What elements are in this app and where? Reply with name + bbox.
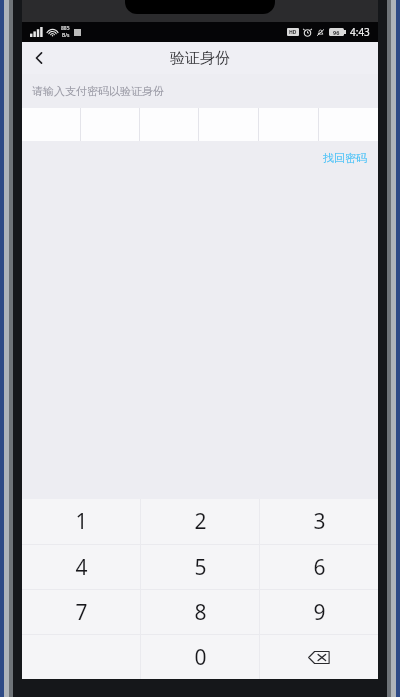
button[interactable]: 找回密码: [320, 149, 370, 167]
button[interactable]: 8: [141, 590, 259, 634]
staticText: 找回密码: [323, 151, 367, 165]
staticText: 6: [313, 553, 326, 582]
staticText: 7: [75, 598, 88, 627]
button[interactable]: 4: [22, 545, 140, 589]
staticText: 96: [333, 29, 340, 36]
button[interactable]: 1: [22, 499, 140, 544]
staticText: 5: [194, 553, 207, 582]
staticText: 请输入支付密码以验证身份: [32, 84, 164, 98]
button[interactable]: 2: [141, 499, 259, 544]
staticText: HD: [289, 29, 297, 36]
staticText: 2: [194, 507, 207, 536]
button[interactable]: 0: [141, 635, 259, 679]
button[interactable]: 5: [141, 545, 259, 589]
staticText: 3: [313, 507, 326, 536]
button[interactable]: Backspace: [260, 635, 378, 679]
staticText: 0: [194, 643, 207, 672]
staticText: 1: [75, 507, 88, 536]
staticText: B/s: [62, 32, 70, 39]
staticText: 4: [75, 553, 88, 582]
staticText: 验证身份: [170, 49, 230, 68]
button[interactable]: 6: [260, 545, 378, 589]
staticText: 885: [61, 25, 70, 32]
staticText: 9: [313, 598, 326, 627]
button[interactable]: Back: [22, 42, 56, 74]
button[interactable]: 7: [22, 590, 140, 634]
staticText: 8: [194, 598, 207, 627]
staticText: 4:43: [350, 25, 370, 39]
button[interactable]: 3: [260, 499, 378, 544]
button[interactable]: 9: [260, 590, 378, 634]
